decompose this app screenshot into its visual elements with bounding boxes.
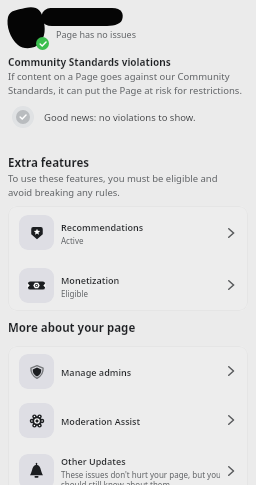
staticText: Active	[61, 235, 84, 246]
staticText: Manage admins	[61, 366, 132, 378]
staticText: Recommendations	[61, 221, 144, 233]
staticText: Extra features	[8, 155, 90, 171]
staticText: More about your page	[8, 320, 136, 336]
staticText: Page has no issues	[56, 28, 136, 40]
button[interactable]: Manage admins	[8, 346, 248, 396]
staticText: Other Updates	[61, 455, 126, 467]
staticText: If content on a Page goes against our Co…	[8, 70, 242, 97]
staticText: Good news: no violations to show.	[44, 111, 196, 124]
button[interactable]: Monetization	[8, 259, 248, 311]
staticText: Eligible	[61, 288, 89, 299]
staticText: To use these features, you must be eligi…	[8, 172, 218, 199]
staticText: Monetization	[61, 274, 120, 286]
button[interactable]: Other Updates	[8, 444, 248, 485]
button[interactable]: Recommendations	[8, 206, 248, 259]
staticText: Moderation Assist	[61, 415, 141, 427]
button[interactable]: Moderation Assist	[8, 396, 248, 444]
staticText: These issues don't hurt your page, but y…	[61, 469, 220, 485]
staticText: Community Standards violations	[8, 55, 171, 69]
